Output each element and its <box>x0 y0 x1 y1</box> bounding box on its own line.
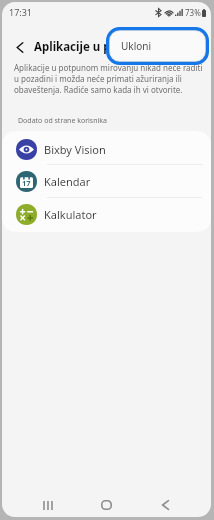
button[interactable]: Kalkulator <box>2 197 211 232</box>
button[interactable]: Bixby Vision <box>2 131 211 164</box>
staticText: Bixby Vision <box>44 142 106 157</box>
button[interactable]: Ukloni <box>110 31 205 61</box>
staticText: Aplikacije u potpunom mirovanju nikad ne… <box>14 62 206 95</box>
staticText: Kalendar <box>44 174 91 189</box>
staticText: 17:31 <box>9 6 33 18</box>
staticText: Dodato od strane korisnika <box>18 116 107 126</box>
staticText: Ukloni <box>121 39 152 53</box>
staticText: Aplikacije u potpunom mirovanju <box>34 39 211 55</box>
button[interactable]: Navigate up <box>7 34 33 60</box>
staticText: 73% <box>185 7 201 18</box>
button[interactable]: 17 <box>2 164 211 197</box>
staticText: Kalkulator <box>44 207 97 222</box>
staticText: 17 <box>22 178 31 188</box>
button[interactable]: Home <box>84 488 129 517</box>
button[interactable]: Recent apps <box>25 488 70 517</box>
button[interactable]: Back <box>143 488 188 517</box>
